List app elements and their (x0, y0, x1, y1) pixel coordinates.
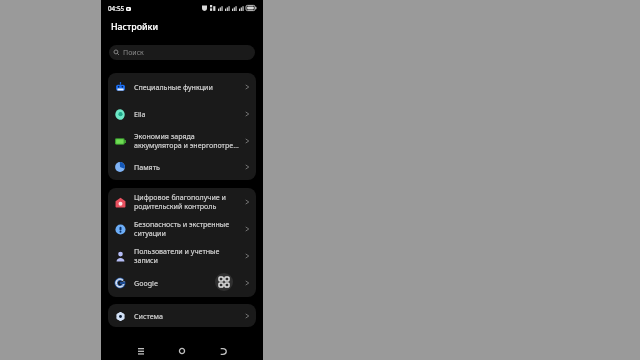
staticText: Поиск (123, 48, 144, 58)
button[interactable]: Специальные функции (108, 73, 256, 100)
staticText: Система (134, 311, 242, 321)
button[interactable]: Приложения (215, 273, 233, 291)
button[interactable]: Ella (108, 100, 256, 127)
staticText: Специальные функции (134, 82, 242, 92)
staticText: Пользователи и учетные записи (134, 246, 242, 265)
staticText: Экономия заряда аккумулятора и энергопот… (134, 131, 242, 150)
button[interactable]: Цифровое благополучие и родительский кон… (108, 188, 256, 215)
button[interactable]: Главный экран (172, 341, 192, 360)
staticText: Ella (134, 109, 242, 119)
button[interactable]: Назад (213, 341, 233, 360)
button[interactable]: Недавние приложения (131, 341, 151, 360)
button[interactable]: Память (108, 154, 256, 180)
staticText: Безопасность и экстренные ситуации (134, 219, 242, 238)
staticText: Google (134, 278, 242, 288)
staticText: 04:55 (108, 4, 125, 13)
button[interactable]: Пользователи и учетные записи (108, 242, 256, 269)
button[interactable]: Поиск (109, 45, 255, 60)
staticText: Память (134, 162, 242, 172)
staticText: Настройки (111, 21, 159, 33)
button[interactable]: Безопасность и экстренные ситуации (108, 215, 256, 242)
button[interactable]: Экономия заряда аккумулятора и энергопот… (108, 127, 256, 154)
button[interactable]: Система (108, 304, 256, 327)
button[interactable]: Google (108, 269, 256, 296)
staticText: Цифровое благополучие и родительский кон… (134, 192, 242, 211)
